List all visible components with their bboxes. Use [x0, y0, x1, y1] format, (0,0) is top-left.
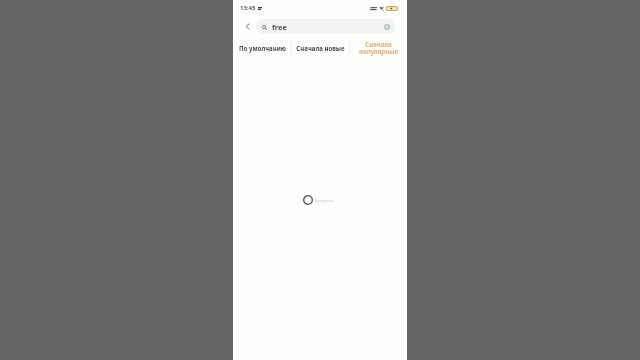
button[interactable]: По умолчанию: [233, 36, 291, 60]
button[interactable]: Сначала новые: [292, 36, 349, 60]
button[interactable]: Back: [241, 20, 253, 32]
staticText: По умолчанию: [239, 44, 286, 52]
button[interactable]: Clear search: [382, 22, 391, 31]
staticText: 13:45: [240, 4, 256, 12]
staticText: Сначала новые: [296, 44, 345, 52]
button[interactable]: free: [256, 19, 395, 34]
staticText: Загрузка...: [315, 197, 337, 203]
staticText: free: [272, 22, 287, 32]
staticText: Сначала популярные: [352, 40, 405, 56]
button[interactable]: Сначала популярные: [350, 36, 407, 60]
